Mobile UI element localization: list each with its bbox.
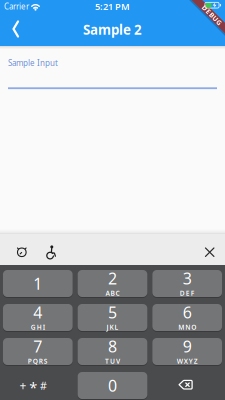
staticText: 5:21 PM xyxy=(95,0,130,13)
button[interactable]: 2 xyxy=(78,270,147,297)
staticText: 0 xyxy=(108,375,117,396)
button[interactable]: 6 xyxy=(152,304,222,331)
button[interactable]: Dismiss keyboard xyxy=(205,248,214,257)
button[interactable]: 0 xyxy=(78,372,147,399)
staticText: ABC xyxy=(105,289,119,298)
button[interactable]: Sample Input xyxy=(8,57,217,89)
staticText: 7 xyxy=(33,335,42,357)
staticText: GHI xyxy=(31,323,45,332)
staticText: 3 xyxy=(183,267,192,289)
staticText: WXYZ xyxy=(177,357,198,366)
button[interactable]: Timer xyxy=(14,244,30,260)
staticText: 1 xyxy=(33,273,42,294)
button[interactable]: Accessibility xyxy=(44,245,58,260)
staticText: JKL xyxy=(106,323,118,332)
button[interactable]: Back xyxy=(8,20,20,38)
button[interactable]: 8 xyxy=(78,338,147,365)
staticText: Carrier xyxy=(4,1,29,12)
button[interactable]: 1 xyxy=(3,270,73,297)
staticText: 8 xyxy=(108,335,117,357)
staticText: 4 xyxy=(33,301,42,323)
staticText: 9 xyxy=(183,335,192,357)
staticText: MNO xyxy=(178,323,196,332)
staticText: 2 xyxy=(108,267,117,289)
staticText: Sample 2 xyxy=(83,21,142,38)
staticText: # xyxy=(40,378,47,393)
staticText: 6 xyxy=(183,301,192,323)
button[interactable]: Delete xyxy=(152,372,222,399)
button[interactable]: 4 xyxy=(3,304,73,331)
staticText: DEF xyxy=(180,289,195,298)
button[interactable]: 9 xyxy=(152,338,222,365)
button[interactable]: 5 xyxy=(78,304,147,331)
staticText: * xyxy=(29,378,37,397)
button[interactable]: 7 xyxy=(3,338,73,365)
staticText: PQRS xyxy=(28,357,48,366)
staticText: + xyxy=(19,377,26,393)
button[interactable]: 3 xyxy=(152,270,222,297)
staticText: 5 xyxy=(108,301,117,323)
staticText: DEBUG xyxy=(199,11,225,20)
staticText: Sample Input xyxy=(8,57,58,68)
button[interactable]: Symbols xyxy=(3,372,73,399)
staticText: TUV xyxy=(105,357,120,366)
